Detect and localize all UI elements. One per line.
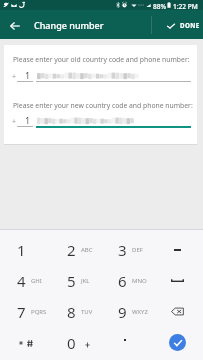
staticText: 8 [67, 302, 76, 322]
staticText: Change number [34, 19, 104, 31]
staticText: 1:22 PM [173, 2, 198, 11]
staticText: PQRS [31, 308, 47, 316]
button[interactable]: 4 [0, 265, 50, 296]
staticText: 2 [67, 240, 76, 260]
button[interactable]: 5 [50, 265, 101, 296]
button[interactable]: DONE [152, 10, 203, 39]
staticText: TUV [81, 308, 93, 316]
staticText: Please enter your new country code and p… [13, 101, 193, 110]
button[interactable]: 9 [101, 296, 152, 327]
button[interactable]: Back [0, 10, 29, 39]
other: Dash [152, 234, 203, 265]
staticText: 7 [17, 302, 26, 322]
staticText: WXYZ [132, 308, 148, 316]
button[interactable]: 2 [50, 234, 101, 265]
staticText: 3 [118, 240, 127, 260]
button[interactable]: 7 [0, 296, 50, 327]
staticText: 88% [153, 2, 167, 11]
staticText: DEF [132, 246, 143, 254]
staticText: DONE [180, 21, 200, 29]
staticText: JKL [81, 277, 90, 285]
other: Done [152, 327, 203, 358]
button[interactable]: 3 [101, 234, 152, 265]
staticText: Please enter your old country code and p… [13, 55, 190, 64]
button[interactable]: Space [152, 265, 203, 296]
staticText: 9 [118, 302, 127, 322]
button[interactable]: Dash [152, 234, 203, 265]
staticText: 1 [25, 114, 31, 126]
button[interactable]: Backspace [152, 296, 203, 327]
staticText: MNO [132, 277, 147, 285]
button[interactable] [101, 327, 152, 358]
button[interactable] [0, 327, 50, 358]
staticText: 0 [67, 333, 76, 353]
staticText: 1 [25, 69, 31, 81]
button[interactable]: 1 [0, 234, 50, 265]
button[interactable]: 6 [101, 265, 152, 296]
other: Space [152, 265, 203, 296]
button[interactable]: 0 [50, 327, 101, 358]
staticText: 5 [67, 271, 76, 291]
button[interactable]: Done [152, 327, 203, 358]
staticText: + [12, 72, 17, 82]
staticText: GHI [31, 277, 42, 285]
staticText: 4 [17, 271, 26, 291]
button[interactable]: 8 [50, 296, 101, 327]
staticText: ABC [81, 246, 93, 254]
staticText: 1 [17, 240, 26, 260]
staticText: + [12, 117, 17, 127]
other: Backspace [152, 296, 203, 327]
staticText: 6 [118, 271, 127, 291]
